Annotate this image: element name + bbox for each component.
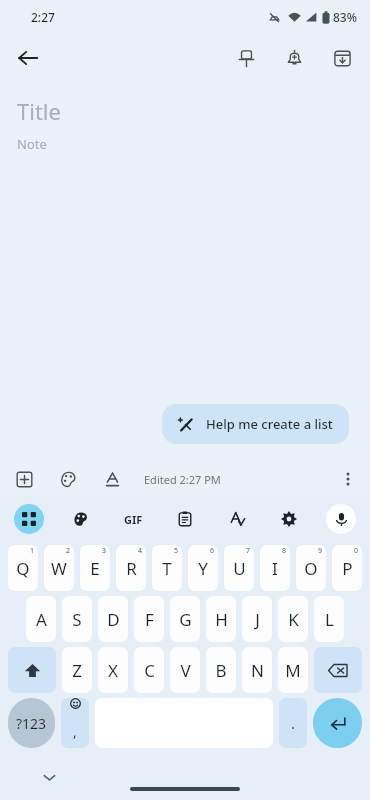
staticText: 2:27	[31, 9, 55, 25]
button[interactable]: Reminder	[274, 38, 314, 78]
staticText: C	[144, 659, 155, 682]
staticText: 9	[318, 546, 323, 556]
button[interactable]: A	[26, 596, 56, 642]
button[interactable]: 8	[260, 545, 290, 591]
staticText: L	[325, 608, 334, 631]
staticText: .	[291, 713, 296, 733]
staticText: Help me create a list	[206, 415, 333, 433]
button[interactable]: 0	[332, 545, 362, 591]
staticText: F	[145, 608, 154, 631]
button[interactable]: 1	[8, 545, 38, 591]
staticText: 5	[174, 546, 179, 556]
button[interactable]: Clipboard	[170, 504, 200, 534]
staticText: Edited 2:27 PM	[144, 472, 221, 487]
staticText: GIF	[124, 512, 143, 527]
staticText: 8	[282, 546, 287, 556]
staticText: Y	[198, 557, 208, 580]
button[interactable]: .	[279, 698, 307, 748]
staticText: O	[304, 557, 318, 580]
button[interactable]: Z	[62, 647, 92, 693]
button[interactable]: Help me create a list	[162, 404, 349, 444]
staticText: K	[288, 608, 299, 631]
staticText: B	[215, 659, 227, 682]
button[interactable]: Keyboard menu	[14, 504, 44, 534]
staticText: P	[342, 557, 353, 580]
staticText: Note	[17, 135, 47, 153]
staticText: 6	[210, 546, 215, 556]
button[interactable]: X	[98, 647, 128, 693]
staticText: E	[90, 557, 100, 580]
staticText: 0	[354, 546, 359, 556]
staticText: 1	[30, 546, 35, 556]
staticText: 4	[138, 546, 143, 556]
button[interactable]: Settings	[274, 504, 304, 534]
staticText: H	[215, 608, 228, 631]
staticText: N	[251, 659, 264, 682]
staticText: A	[36, 608, 47, 631]
button[interactable]: H	[206, 596, 236, 642]
button[interactable]: Themes	[66, 504, 96, 534]
button[interactable]: G	[170, 596, 200, 642]
staticText: 3	[102, 546, 107, 556]
button[interactable]: Formatting	[98, 465, 126, 493]
button[interactable]: 5	[152, 545, 182, 591]
button[interactable]: Hide keyboard	[36, 764, 62, 790]
button[interactable]: Background colour	[54, 465, 82, 493]
button[interactable]: N	[242, 647, 272, 693]
staticText: ?123	[16, 714, 47, 733]
button[interactable]: 6	[188, 545, 218, 591]
staticText: U	[233, 557, 246, 580]
staticText: W	[51, 557, 67, 580]
staticText: S	[72, 608, 82, 631]
staticText: I	[272, 557, 278, 580]
staticText: ,	[73, 722, 77, 741]
button[interactable]: F	[134, 596, 164, 642]
button[interactable]: Voice input	[326, 504, 356, 534]
button[interactable]: J	[242, 596, 272, 642]
button[interactable]: Grammar check	[222, 504, 252, 534]
staticText: G	[179, 608, 192, 631]
button[interactable]: Add	[10, 465, 38, 493]
staticText: T	[162, 557, 172, 580]
staticText: 7	[246, 546, 251, 556]
button[interactable]: 7	[224, 545, 254, 591]
button[interactable]: B	[206, 647, 236, 693]
staticText: 2	[66, 546, 71, 556]
button[interactable]: M	[278, 647, 308, 693]
staticText: 83%	[333, 9, 357, 25]
button[interactable]: More options	[332, 463, 364, 495]
button[interactable]: K	[278, 596, 308, 642]
button[interactable]: Shift	[8, 647, 56, 693]
staticText: V	[180, 659, 191, 682]
button[interactable]: C	[134, 647, 164, 693]
staticText: M	[285, 659, 301, 682]
button[interactable]: 2	[44, 545, 74, 591]
button[interactable]: Back	[8, 38, 48, 78]
button[interactable]: Archive	[322, 38, 362, 78]
button[interactable]: 9	[296, 545, 326, 591]
staticText: Z	[72, 659, 82, 682]
button[interactable]: GIF	[118, 504, 148, 534]
staticText: R	[126, 557, 137, 580]
staticText: X	[108, 659, 118, 682]
button[interactable]: Enter	[313, 698, 362, 748]
button[interactable]: L	[314, 596, 344, 642]
button[interactable]: 3	[80, 545, 110, 591]
staticText: Title	[17, 96, 61, 126]
staticText: Q	[16, 557, 30, 580]
staticText: J	[255, 608, 260, 631]
button[interactable]: D	[98, 596, 128, 642]
button[interactable]: Emoji and comma	[61, 698, 89, 748]
button[interactable]: S	[62, 596, 92, 642]
staticText: D	[107, 608, 120, 631]
button[interactable]: V	[170, 647, 200, 693]
button[interactable]: ?123	[8, 698, 55, 748]
button[interactable]: Pin	[226, 38, 266, 78]
button[interactable]: Backspace	[314, 647, 362, 693]
button[interactable]: 4	[116, 545, 146, 591]
